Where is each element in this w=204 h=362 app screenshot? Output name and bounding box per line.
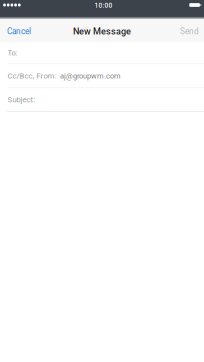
staticText: Subject:	[8, 95, 36, 104]
button[interactable]: Subject:	[0, 88, 204, 111]
button[interactable]: Send	[171, 20, 204, 43]
staticText: 10:00	[95, 2, 113, 9]
staticText: To:	[8, 48, 18, 57]
staticText: Cancel	[7, 27, 31, 36]
button[interactable]: To:	[0, 42, 204, 64]
staticText: Cc/Bcc, From:	[8, 71, 57, 80]
button[interactable]: Cancel	[0, 20, 40, 43]
staticText: aj@groupwm.com	[60, 72, 121, 80]
staticText: Send	[180, 27, 199, 36]
staticText: New Message	[73, 26, 131, 37]
button[interactable]: Cc/Bcc, From:	[0, 64, 204, 88]
